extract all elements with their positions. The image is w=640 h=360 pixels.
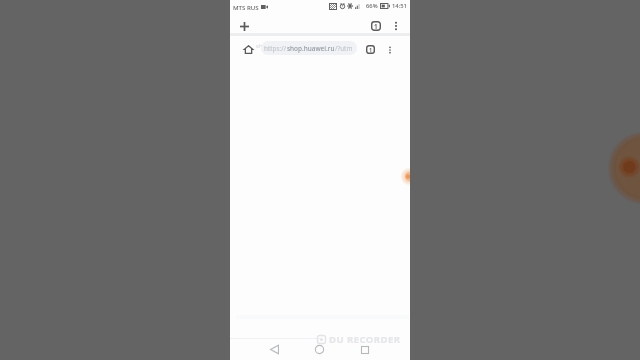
button[interactable]: Open tabs	[364, 43, 377, 56]
staticText: MTS RUS	[233, 3, 259, 11]
staticText: /?utm	[335, 44, 353, 53]
button[interactable]: Screen recorder	[398, 166, 410, 187]
staticText: 1	[374, 22, 378, 30]
staticText: 1	[369, 46, 373, 53]
button[interactable]: https://	[261, 41, 357, 55]
button[interactable]: More options	[389, 19, 403, 33]
staticText: shop.huawei.ru	[287, 44, 335, 53]
button[interactable]: Home	[311, 341, 328, 358]
button[interactable]: Back	[266, 341, 283, 358]
staticText: https://	[264, 44, 287, 53]
staticText: 66%	[366, 2, 378, 10]
button[interactable]: Home page	[242, 43, 255, 56]
button[interactable]: Open tabs	[369, 19, 383, 33]
staticText: DU RECORDER	[329, 333, 401, 346]
staticText: 14:51	[392, 2, 407, 10]
button[interactable]: Recent apps	[356, 341, 373, 358]
button[interactable]: New tab	[237, 19, 251, 33]
staticText: sh	[256, 42, 263, 49]
button[interactable]: More options	[383, 43, 396, 56]
